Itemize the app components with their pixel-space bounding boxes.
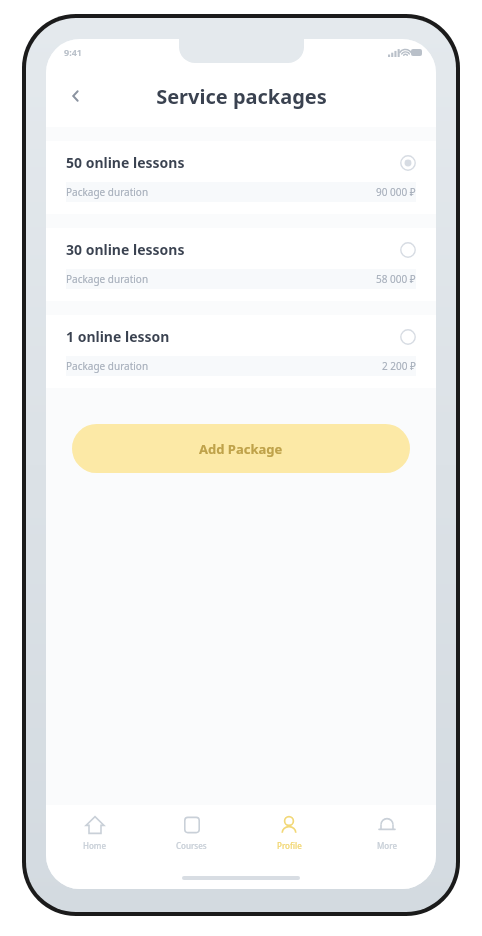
staticText: 2 200 ₽ xyxy=(382,359,416,373)
button[interactable]: Add Package xyxy=(72,424,410,473)
staticText: 50 online lessons xyxy=(66,153,185,172)
staticText: Service packages xyxy=(156,83,327,110)
staticText: Home xyxy=(83,840,107,851)
staticText: Courses xyxy=(176,840,207,851)
button[interactable]: More xyxy=(338,805,436,867)
staticText: 1 online lesson xyxy=(66,327,170,346)
staticText: Add Package xyxy=(199,440,283,458)
staticText: Package duration xyxy=(66,185,149,199)
button[interactable]: 50 online lessons xyxy=(46,141,436,214)
staticText: Package duration xyxy=(66,272,149,286)
staticText: 90 000 ₽ xyxy=(376,185,416,199)
staticText: 58 000 ₽ xyxy=(376,272,416,286)
staticText: Profile xyxy=(277,840,302,851)
button[interactable]: Courses xyxy=(143,805,240,867)
staticText: More xyxy=(377,840,398,851)
staticText: Package duration xyxy=(66,359,149,373)
button[interactable]: Back xyxy=(54,74,98,118)
button[interactable]: Home xyxy=(46,805,143,867)
button[interactable]: Profile xyxy=(240,805,338,867)
button[interactable]: 1 online lesson xyxy=(46,315,436,388)
button[interactable]: 30 online lessons xyxy=(46,228,436,301)
staticText: 30 online lessons xyxy=(66,240,185,259)
staticText: 9:41 xyxy=(64,46,82,58)
